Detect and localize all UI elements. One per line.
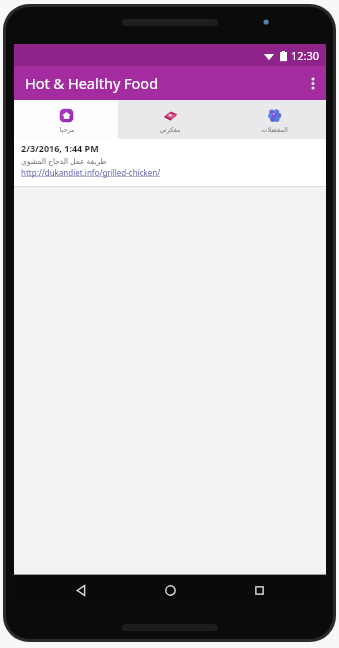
button[interactable]: Back [59, 575, 103, 606]
button[interactable]: Home [148, 575, 192, 606]
staticText: مفكرتي [159, 126, 181, 134]
staticText: 2/3/2016, 1:44 PM [21, 142, 99, 154]
staticText: مرحبا [59, 126, 75, 134]
staticText: طريقة عمل الدجاج المشوي [21, 156, 107, 166]
button[interactable]: 2/3/2016, 1:44 PM [14, 139, 326, 186]
staticText: http://dukandiet.info/grilled-chicken/ [21, 167, 161, 178]
button[interactable]: Recent apps [237, 575, 281, 606]
staticText: Hot & Healthy Food [25, 73, 159, 93]
button[interactable]: Notebook tab [118, 100, 222, 139]
button[interactable]: Favourites tab [222, 100, 326, 139]
button[interactable]: More options [300, 66, 326, 100]
staticText: 12:30 [291, 48, 320, 63]
button[interactable]: Home tab [14, 100, 118, 139]
staticText: المفضلات [261, 126, 288, 134]
